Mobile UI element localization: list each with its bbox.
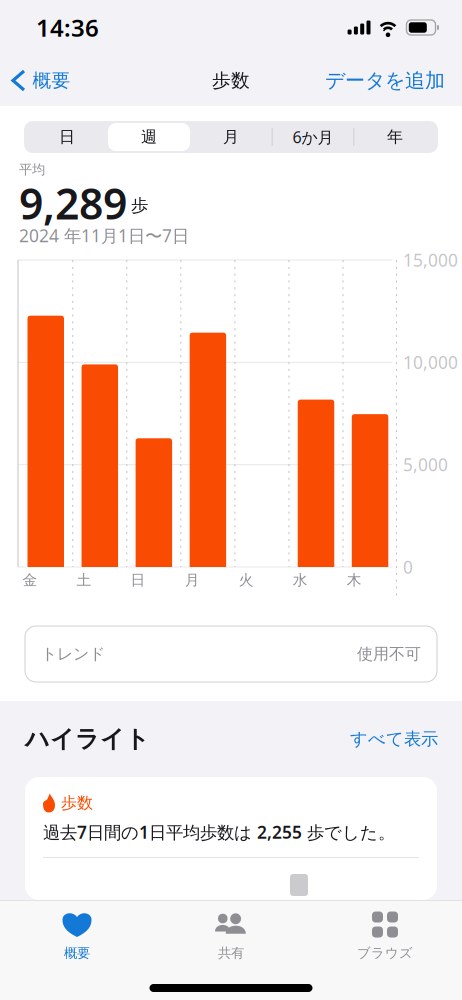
staticText: 15,000 [403,248,458,271]
staticText: すべて表示 [350,728,438,750]
staticText: 概要 [64,945,90,961]
staticText: 10,000 [403,351,458,374]
staticText: 日 [59,127,75,147]
button[interactable]: トレンド [25,626,437,682]
staticText: 土 [76,571,91,589]
staticText: 歩数 [61,793,93,813]
staticText: 週 [141,127,157,147]
button[interactable]: 日 [26,123,108,151]
staticText: トレンド [41,644,105,664]
staticText: 月 [185,571,200,589]
staticText: 年 [387,127,403,147]
staticText: 6か月 [292,126,333,148]
button[interactable]: データを追加 [315,59,462,102]
button[interactable]: 年 [354,123,436,151]
staticText: 9,289 [19,175,127,231]
staticText: 5,000 [403,453,448,476]
staticText: データを追加 [325,68,445,93]
button[interactable]: 週 [108,123,190,151]
button[interactable]: 共有 [154,901,308,966]
staticText: 月 [223,127,239,147]
staticText: 0 [403,555,413,578]
staticText: 2024 年11月1日〜7日 [19,224,189,247]
button[interactable]: 月 [190,123,272,151]
staticText: 火 [239,571,254,589]
button[interactable]: 6か月 [272,123,354,151]
staticText: 使用不可 [357,644,421,664]
button[interactable]: 概要 [0,901,154,966]
staticText: 共有 [218,945,244,961]
button[interactable]: 概要 [0,60,80,101]
staticText: 14:36 [36,12,99,43]
staticText: 日 [131,571,146,589]
staticText: 水 [293,571,308,589]
staticText: 過去7日間の1日平均歩数は 2,255 歩でした。 [43,820,395,843]
staticText: 木 [347,571,362,589]
staticText: 平均 [19,161,45,178]
button[interactable]: ブラウズ [308,901,462,966]
staticText: 歩 [131,195,148,216]
staticText: 歩数 [212,69,250,92]
staticText: ブラウズ [357,945,413,961]
staticText: 金 [22,571,37,589]
staticText: 概要 [32,69,70,92]
button[interactable]: すべて表示 [340,720,438,758]
staticText: ハイライト [25,724,150,754]
